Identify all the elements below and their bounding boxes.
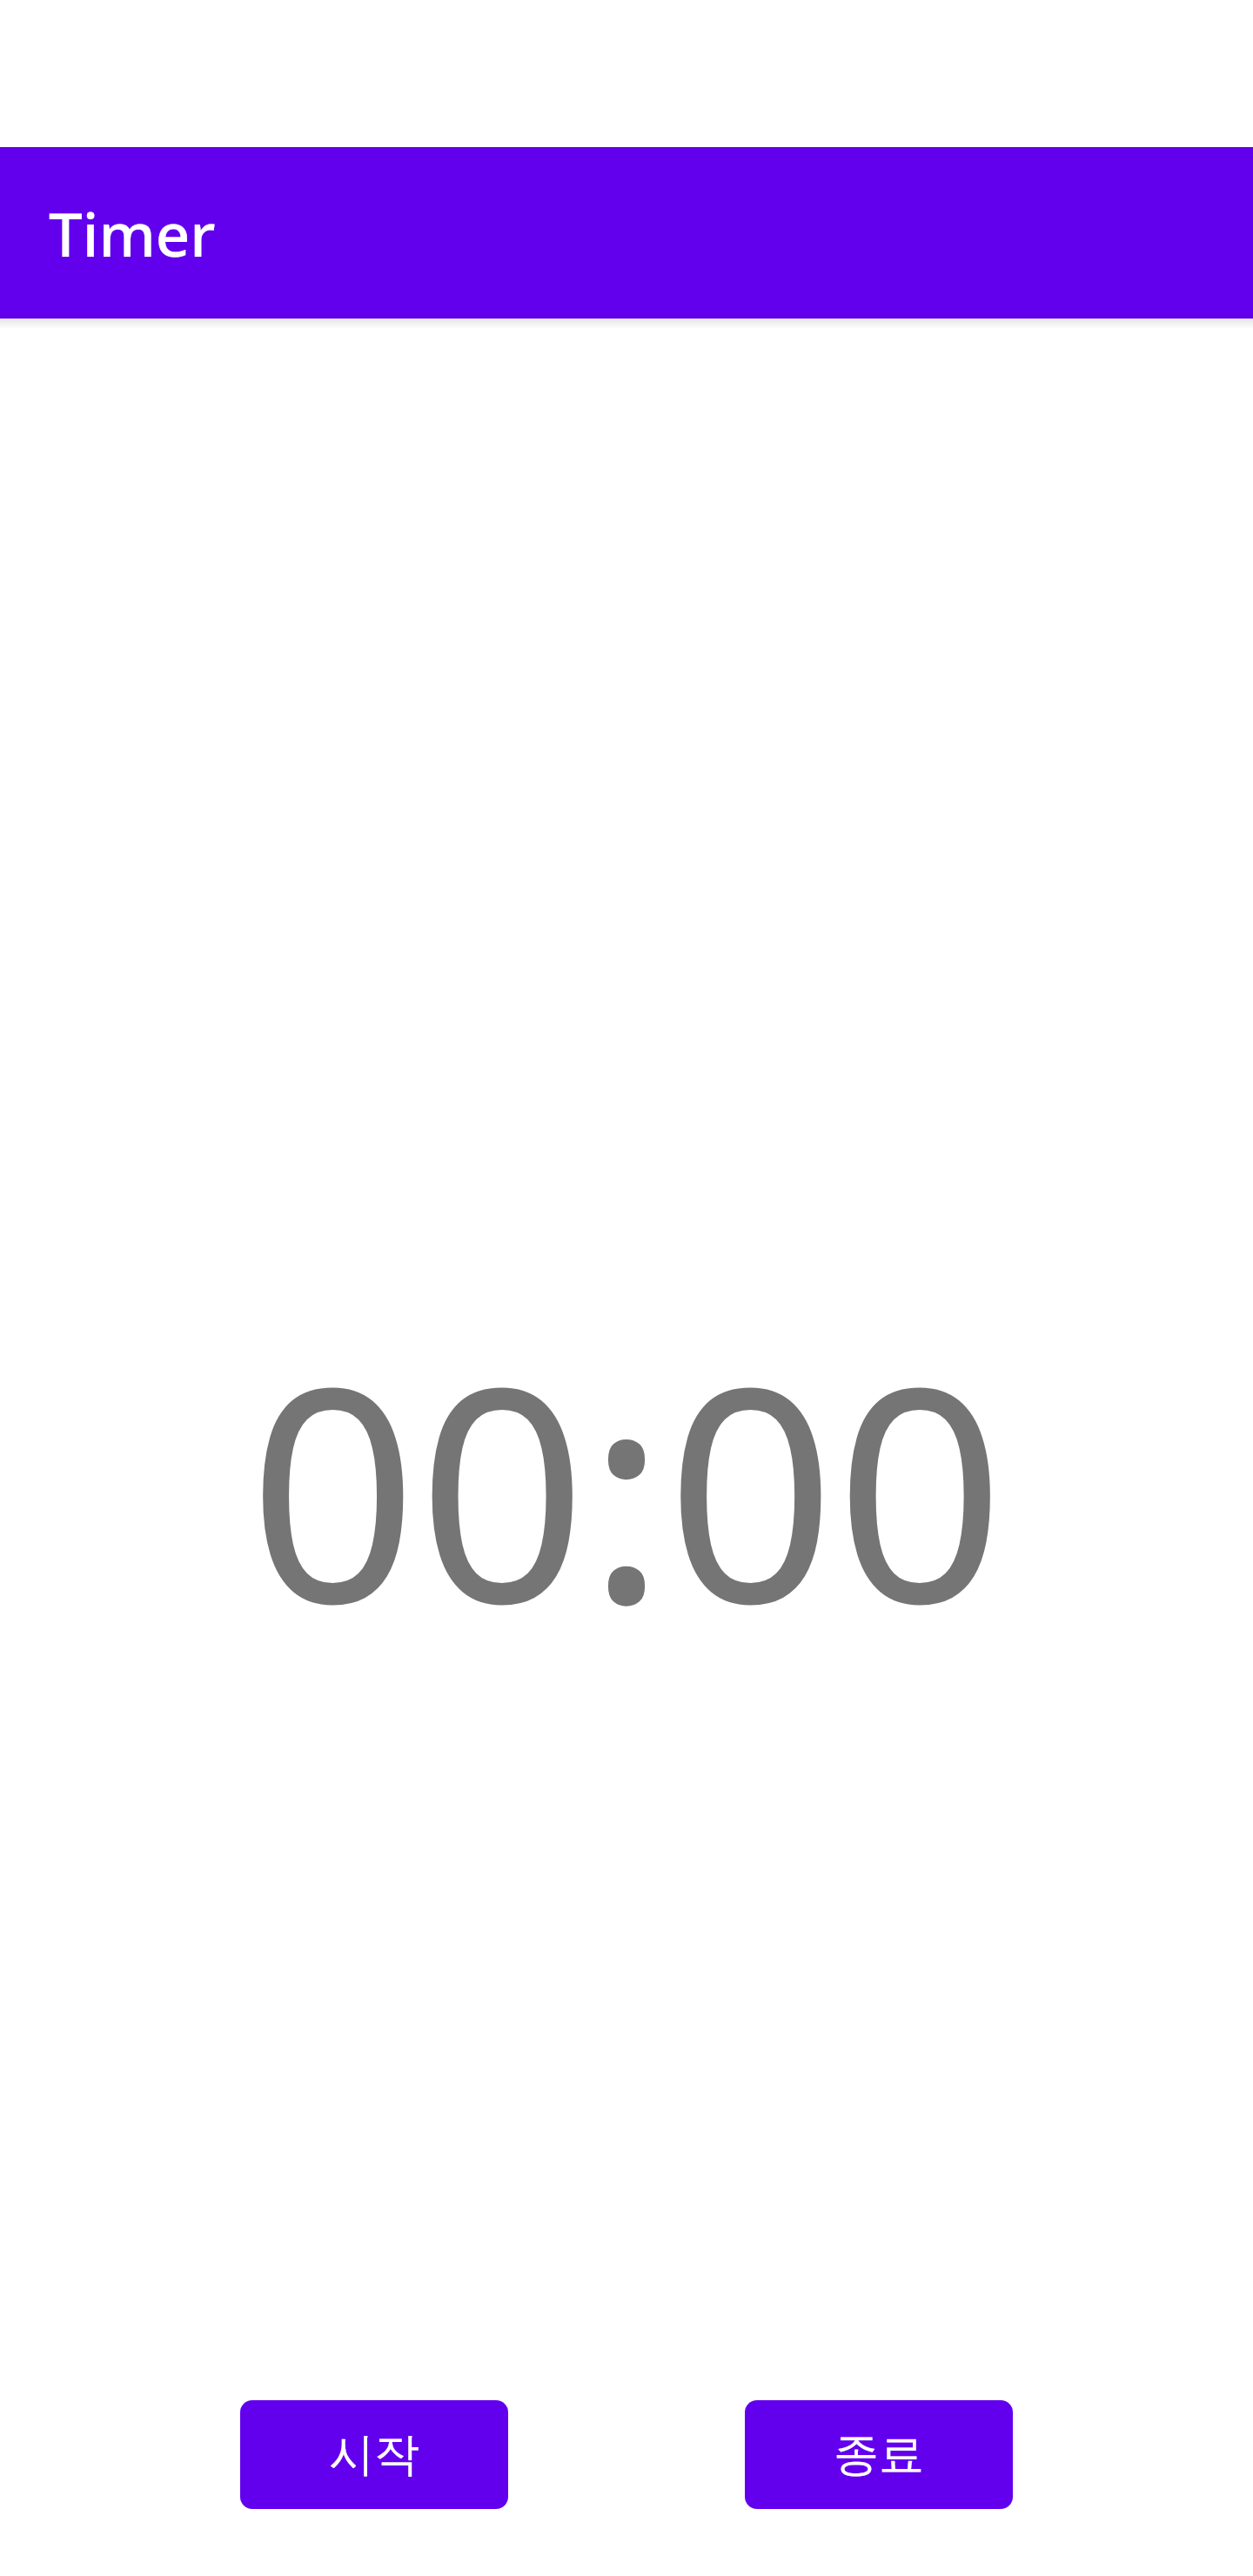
- button[interactable]: 시작: [240, 2400, 508, 2509]
- button[interactable]: 종료: [745, 2400, 1013, 2509]
- staticText: Timer: [49, 192, 216, 274]
- staticText: 00:00: [248, 1286, 1005, 1689]
- staticText: 시작: [329, 2426, 419, 2484]
- staticText: 종료: [834, 2426, 924, 2484]
